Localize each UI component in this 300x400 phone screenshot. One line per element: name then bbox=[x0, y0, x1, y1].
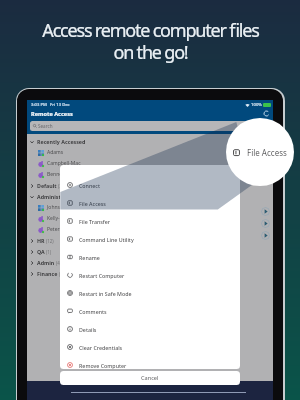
staticText: Remote Access bbox=[31, 110, 73, 118]
button[interactable]: Restart Computer bbox=[60, 266, 240, 284]
staticText: Recently Accessed bbox=[37, 138, 86, 145]
button[interactable]: File Transfer bbox=[60, 212, 240, 230]
staticText: (3) bbox=[58, 183, 64, 189]
staticText: Bennett bbox=[47, 171, 66, 178]
button[interactable]: Finance bbox=[27, 268, 273, 279]
button[interactable]: Refresh bbox=[263, 110, 270, 117]
button[interactable]: Peterson bbox=[27, 224, 273, 235]
staticText: Clear Credentials bbox=[79, 344, 123, 351]
button[interactable]: Connect to computer bbox=[261, 207, 270, 216]
staticText: Kelly-PC bbox=[47, 215, 66, 222]
button[interactable]: Default bbox=[27, 180, 273, 191]
button[interactable]: Clear Credentials bbox=[60, 338, 240, 356]
staticText: Rename bbox=[79, 254, 100, 261]
staticText: 3:03 PM Fri 13 Dec bbox=[31, 102, 70, 108]
staticText: Command Line Utility bbox=[79, 236, 134, 243]
button[interactable]: Connect bbox=[60, 176, 240, 194]
staticText: Restart Computer bbox=[79, 272, 125, 279]
button[interactable]: Connect to computer bbox=[261, 231, 270, 240]
staticText: (12) bbox=[46, 238, 54, 244]
button[interactable]: Campbell-Mac bbox=[27, 158, 273, 169]
staticText: Cancel bbox=[141, 374, 159, 382]
staticText: Admin bbox=[37, 259, 55, 266]
staticText: 100% bbox=[250, 102, 263, 108]
staticText: (1) bbox=[46, 249, 52, 255]
staticText: (4) bbox=[56, 260, 62, 266]
button[interactable]: File Access bbox=[60, 194, 240, 212]
button[interactable]: Command Line Utility bbox=[60, 230, 240, 248]
staticText: QA bbox=[37, 248, 45, 255]
staticText: Johnson bbox=[47, 204, 67, 211]
button[interactable]: Administration bbox=[27, 191, 273, 202]
button[interactable]: HR bbox=[27, 235, 273, 246]
button[interactable]: Details bbox=[60, 320, 240, 338]
button[interactable]: Rename bbox=[60, 248, 240, 266]
staticText: Comments bbox=[79, 308, 107, 315]
staticText: Peterson bbox=[47, 226, 69, 233]
staticText: (8) bbox=[59, 271, 65, 277]
button[interactable]: Johnson bbox=[27, 202, 273, 213]
staticText: Details bbox=[79, 326, 97, 333]
staticText: Finance bbox=[37, 270, 58, 277]
staticText: Administration bbox=[37, 193, 77, 200]
button[interactable]: Cancel bbox=[60, 371, 240, 385]
staticText: Access remote computer files on the go! bbox=[42, 18, 259, 64]
staticText: Restart in Safe Mode bbox=[79, 290, 132, 297]
button[interactable]: Search bbox=[30, 121, 270, 131]
staticText: File Access bbox=[79, 200, 106, 207]
staticText: Campbell-Mac bbox=[47, 160, 81, 167]
button[interactable]: QA bbox=[27, 246, 273, 257]
button[interactable]: Kelly-PC bbox=[27, 213, 273, 224]
staticText: File Access bbox=[247, 147, 287, 158]
staticText: Default bbox=[37, 182, 57, 189]
button[interactable]: Admin bbox=[27, 257, 273, 268]
button[interactable]: Adams bbox=[27, 147, 273, 158]
button[interactable]: Recently Accessed bbox=[27, 136, 273, 147]
button[interactable]: Connect to computer bbox=[261, 219, 270, 228]
staticText: Adams bbox=[47, 149, 64, 156]
button[interactable]: Bennett bbox=[27, 169, 273, 180]
staticText: File Transfer bbox=[79, 218, 111, 225]
button[interactable]: Restart in Safe Mode bbox=[60, 284, 240, 302]
staticText: HR bbox=[37, 237, 45, 244]
staticText: Remove Computer bbox=[79, 362, 127, 369]
staticText: Search bbox=[38, 123, 53, 129]
button[interactable]: Comments bbox=[60, 302, 240, 320]
staticText: Connect bbox=[79, 182, 100, 189]
button[interactable]: Remove Computer bbox=[60, 356, 240, 369]
